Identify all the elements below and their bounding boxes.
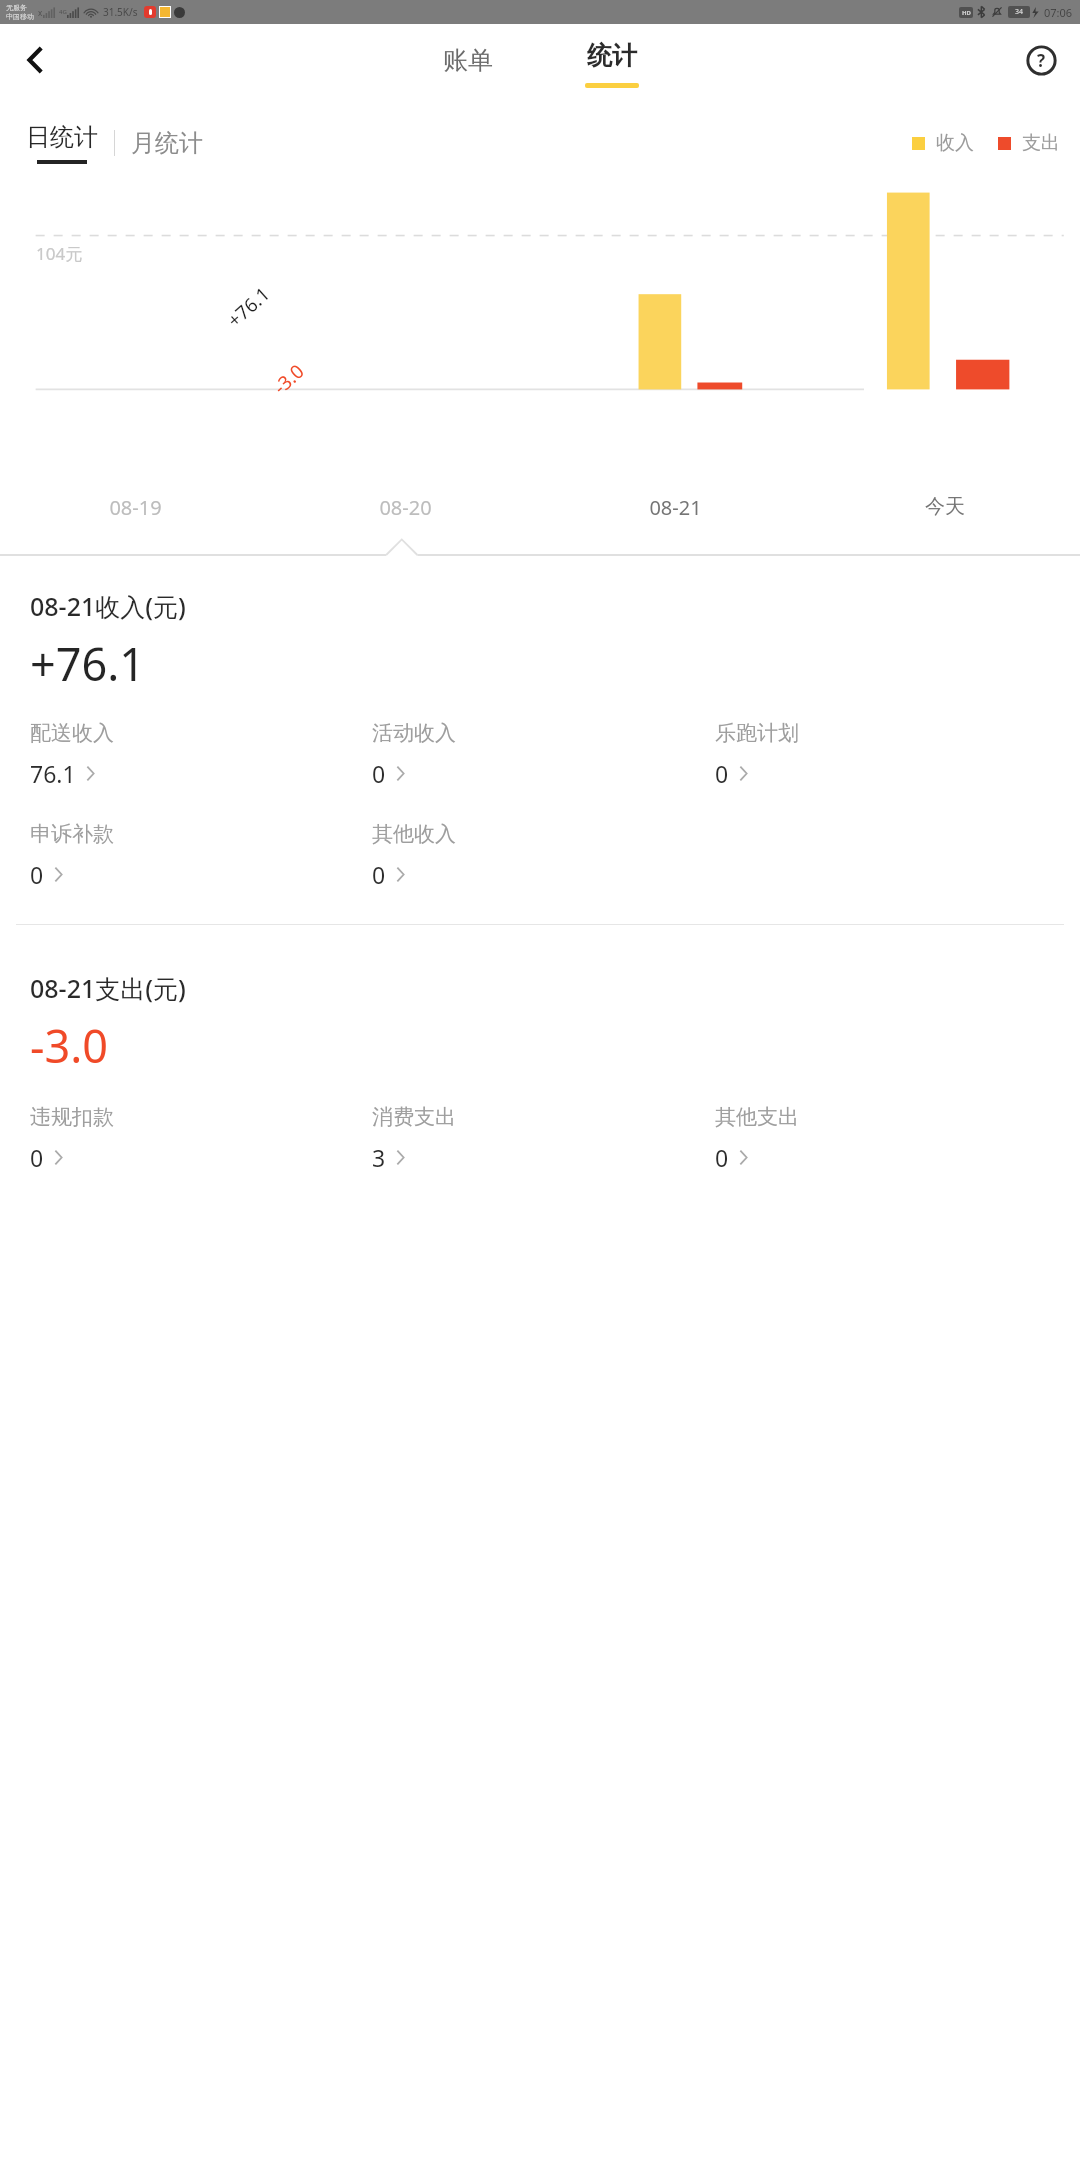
button[interactable]: 配送收入 [30, 720, 122, 791]
staticText: -3.0 [267, 358, 309, 400]
staticText: 违规扣款 [30, 1104, 114, 1130]
button[interactable]: Help [1016, 35, 1066, 85]
staticText: 08-19 [109, 494, 162, 521]
staticText: 申诉补款 [30, 821, 114, 847]
staticText: 活动收入 [372, 720, 456, 746]
staticText: 76.1 [30, 758, 76, 789]
staticText: 统计 [587, 40, 637, 71]
staticText: +76.1 [30, 633, 146, 694]
staticText: 无服务 [6, 3, 27, 12]
staticText: ? [1037, 49, 1046, 72]
staticText: 其他收入 [372, 821, 456, 847]
staticText: HD [962, 9, 971, 17]
staticText: 0 [715, 1142, 729, 1173]
staticText: 08-20 [379, 494, 432, 521]
staticText: +76.1 [222, 281, 275, 333]
staticText: 消费支出 [372, 1104, 456, 1130]
button[interactable]: 消费支出 [372, 1104, 464, 1175]
staticText: 07:06 [1044, 5, 1073, 20]
staticText: 今天 [925, 494, 965, 519]
button[interactable]: 其他支出 [715, 1104, 807, 1175]
staticText: 0 [30, 859, 44, 890]
button[interactable]: 账单 [427, 37, 509, 84]
staticText: 3 [372, 1142, 386, 1173]
staticText: 乐跑计划 [715, 720, 799, 746]
staticText: 0 [715, 758, 729, 789]
staticText: 0 [372, 758, 386, 789]
button[interactable]: 统计 [569, 40, 655, 88]
staticText: 日统计 [26, 122, 98, 152]
staticText: 31.5K/s [103, 5, 138, 19]
staticText: 中国移动 [6, 12, 34, 21]
staticText: 配送收入 [30, 720, 114, 746]
staticText: 0 [372, 859, 386, 890]
staticText: 收入 [936, 131, 974, 155]
button[interactable]: 月统计 [127, 122, 207, 164]
staticText: -3.0 [30, 1015, 109, 1076]
staticText: 08-21收入(元) [30, 589, 186, 623]
button[interactable]: 活动收入 [372, 720, 464, 791]
staticText: 34 [1015, 7, 1024, 17]
button[interactable]: Back [10, 35, 60, 85]
staticText: x [38, 7, 43, 18]
button[interactable]: 申诉补款 [30, 821, 122, 892]
staticText: 4G [59, 8, 67, 16]
button[interactable]: 违规扣款 [30, 1104, 122, 1175]
staticText: 0 [30, 1142, 44, 1173]
staticText: 其他支出 [715, 1104, 799, 1130]
button[interactable]: 其他收入 [372, 821, 464, 892]
button[interactable]: 日统计 [22, 122, 102, 164]
staticText: 支出 [1022, 131, 1060, 155]
button[interactable]: 乐跑计划 [715, 720, 807, 791]
staticText: 104元 [36, 242, 83, 265]
staticText: 08-21支出(元) [30, 971, 186, 1005]
staticText: 月统计 [131, 128, 203, 158]
staticText: 账单 [443, 45, 493, 76]
staticText: 08-21 [649, 494, 702, 521]
